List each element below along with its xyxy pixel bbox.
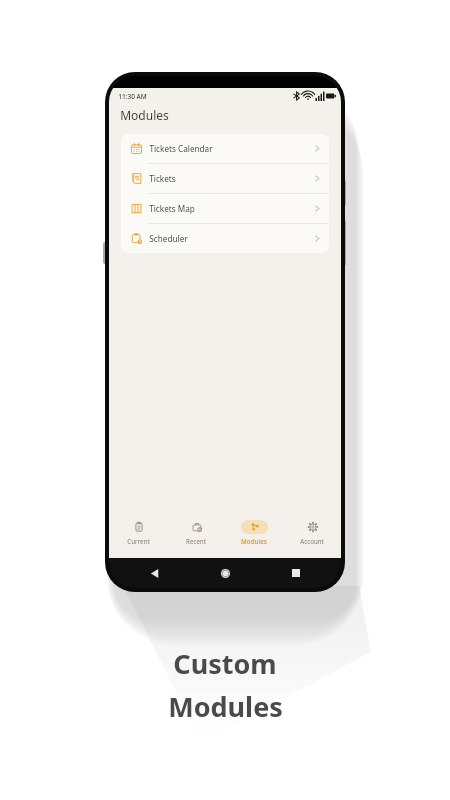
button[interactable]: Current xyxy=(109,520,167,558)
button[interactable]: Home xyxy=(214,562,236,584)
button[interactable]: Recent xyxy=(167,520,225,558)
staticText: 11:30 AM xyxy=(118,92,147,101)
button[interactable]: Tickets Map xyxy=(121,194,329,223)
button[interactable]: Scheduler xyxy=(121,224,329,253)
button[interactable]: Tickets xyxy=(121,164,329,193)
staticText: Recent xyxy=(186,537,206,545)
button[interactable]: Recent apps xyxy=(285,562,307,584)
button[interactable]: Back xyxy=(143,562,165,584)
staticText: Account xyxy=(300,537,324,545)
staticText: Custom xyxy=(173,645,277,682)
button[interactable]: Account xyxy=(283,520,341,558)
staticText: Tickets xyxy=(149,173,176,184)
staticText: Modules xyxy=(120,107,169,123)
button[interactable]: Tickets Calendar xyxy=(121,134,329,163)
button[interactable]: Modules xyxy=(225,520,283,558)
staticText: Modules xyxy=(241,537,267,545)
staticText: Modules xyxy=(168,688,283,725)
staticText: Current xyxy=(127,537,150,545)
staticText: Tickets Map xyxy=(149,203,195,214)
staticText: Tickets Calendar xyxy=(149,143,213,154)
staticText: Scheduler xyxy=(149,233,188,244)
